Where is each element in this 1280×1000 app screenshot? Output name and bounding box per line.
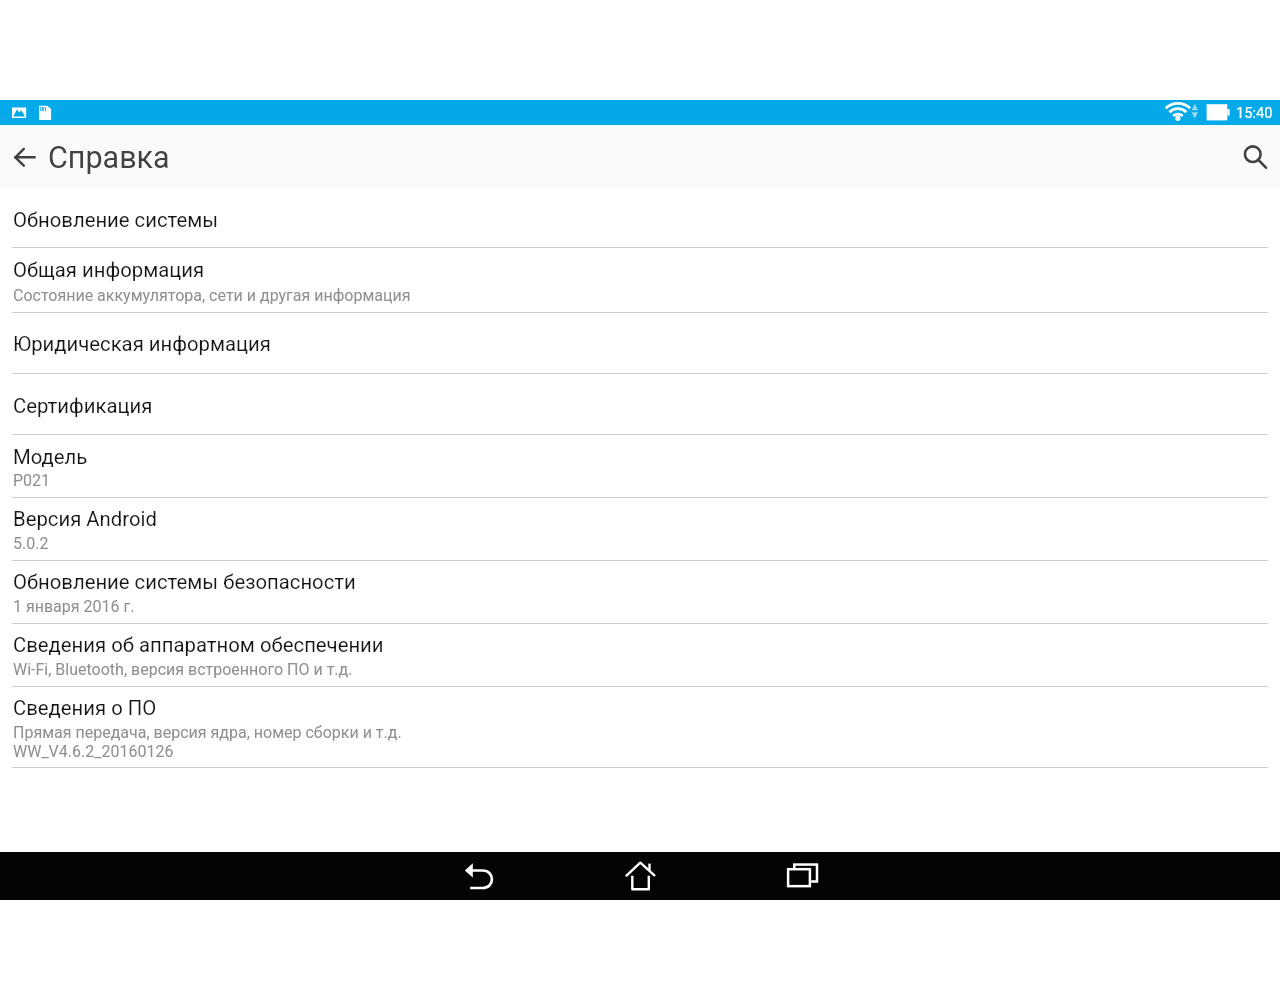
button[interactable]: Home	[576, 852, 704, 900]
button[interactable]: Версия Android	[0, 497, 1280, 560]
staticText: 5.0.2	[13, 534, 49, 553]
staticText: WW_V4.6.2_20160126	[13, 742, 174, 761]
button[interactable]: Сертификация	[0, 373, 1280, 434]
button[interactable]: Модель	[0, 434, 1280, 497]
staticText: Состояние аккумулятора, сети и другая ин…	[13, 286, 411, 305]
button[interactable]: Recent apps	[738, 852, 866, 900]
button[interactable]: Сведения об аппаратном обеспечении	[0, 623, 1280, 686]
button[interactable]: Общая информация	[0, 247, 1280, 312]
button[interactable]: Search	[1226, 125, 1280, 188]
button[interactable]: Обновление системы безопасности	[0, 560, 1280, 623]
staticText: Модель	[13, 445, 88, 469]
button[interactable]: Сведения о ПО	[0, 686, 1280, 767]
staticText: Сведения о ПО	[13, 696, 157, 720]
staticText: 1 января 2016 г.	[13, 597, 135, 616]
staticText: 15:40	[1236, 104, 1273, 121]
staticText: Прямая передача, версия ядра, номер сбор…	[13, 723, 402, 742]
staticText: Сертификация	[13, 394, 153, 418]
button[interactable]: Юридическая информация	[0, 312, 1280, 373]
staticText: Обновление системы безопасности	[13, 570, 356, 594]
staticText: Версия Android	[13, 507, 157, 531]
button[interactable]: Back	[414, 852, 542, 900]
button[interactable]: Обновление системы	[0, 188, 1280, 247]
staticText: Wi-Fi, Bluetooth, версия встроенного ПО …	[13, 660, 353, 679]
staticText: Сведения об аппаратном обеспечении	[13, 633, 384, 657]
staticText: P021	[13, 471, 51, 490]
staticText: Общая информация	[13, 258, 205, 282]
staticText: Юридическая информация	[13, 332, 271, 356]
staticText: Обновление системы	[13, 208, 219, 232]
staticText: Справка	[48, 140, 170, 176]
button[interactable]: Navigate up	[0, 125, 49, 188]
